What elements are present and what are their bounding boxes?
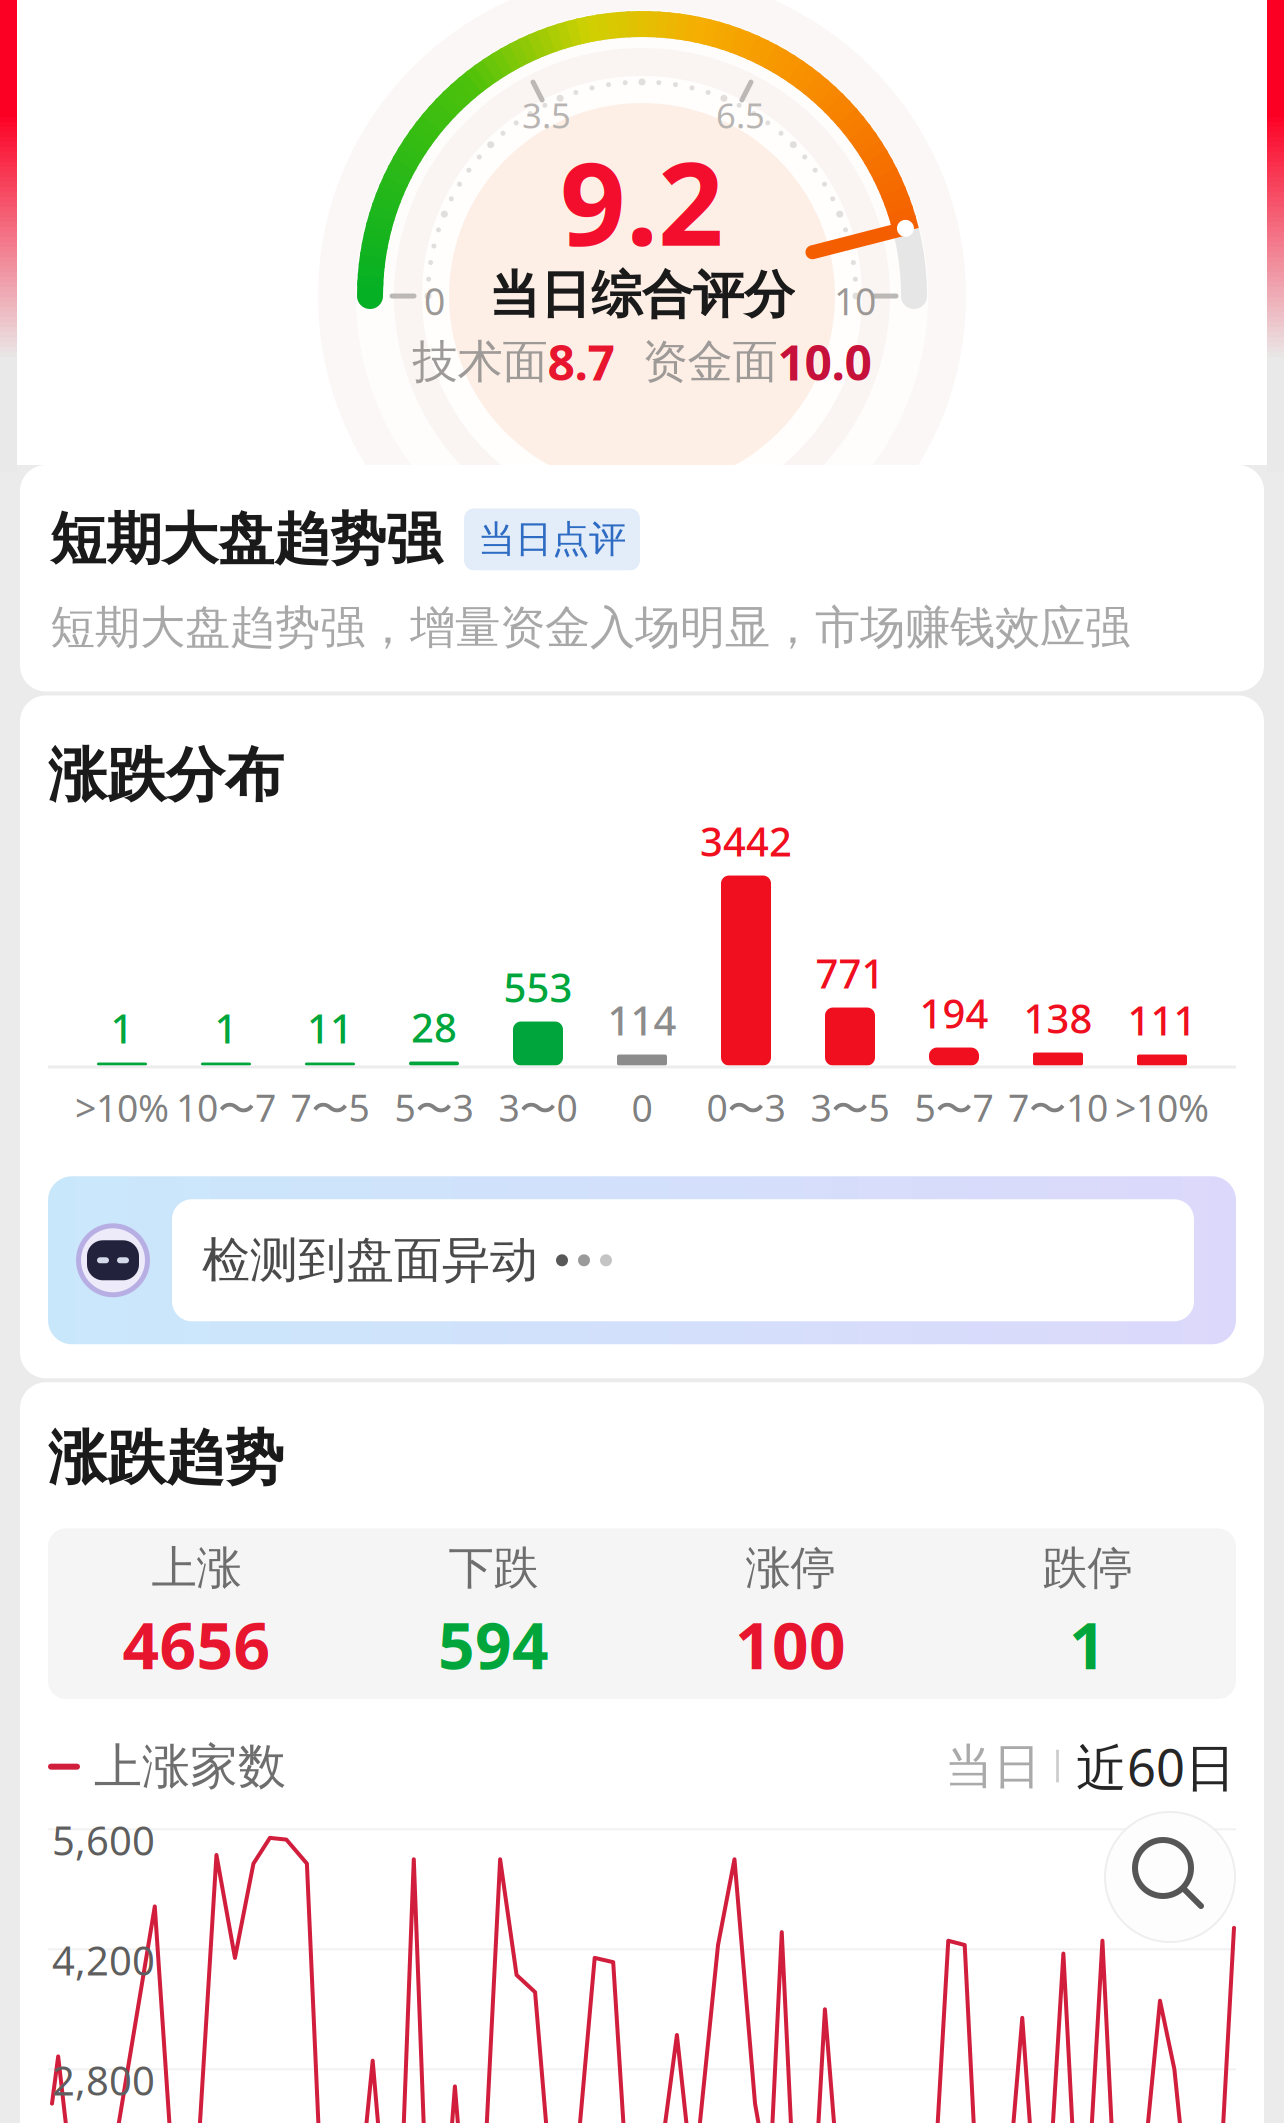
staticText: 1 xyxy=(1069,1602,1106,1687)
button[interactable]: 近60日 xyxy=(1076,1733,1236,1800)
staticText: 近60日 xyxy=(1076,1733,1236,1800)
staticText: 7〜5 xyxy=(290,1082,369,1132)
staticText: 当日综合评分 xyxy=(489,264,795,326)
staticText: 涨跌分布 xyxy=(48,739,284,812)
staticText: 7〜10 xyxy=(1008,1082,1108,1132)
staticText: 1 xyxy=(214,1001,237,1054)
staticText: 当日点评 xyxy=(478,516,626,562)
staticText: 3〜0 xyxy=(498,1082,577,1132)
staticText: 4,200 xyxy=(52,1933,155,1986)
staticText: 9.2 xyxy=(560,125,724,277)
staticText: 28 xyxy=(411,1000,457,1053)
staticText: 111 xyxy=(1127,993,1196,1046)
staticText: 3442 xyxy=(700,814,792,867)
staticText: 跌停 xyxy=(1042,1540,1132,1596)
staticText: 138 xyxy=(1023,991,1092,1044)
staticText: 100 xyxy=(735,1602,846,1687)
staticText: 194 xyxy=(919,986,988,1039)
button[interactable]: Search xyxy=(1105,1812,1235,1942)
staticText: 5〜3 xyxy=(394,1082,473,1132)
staticText: >10% xyxy=(1115,1083,1209,1132)
staticText: 10 xyxy=(834,276,876,326)
button[interactable]: 当日 xyxy=(945,1737,1041,1796)
staticText: 5〜7 xyxy=(914,1082,993,1132)
staticText: 8.7 xyxy=(547,330,614,394)
staticText: 114 xyxy=(607,993,676,1046)
staticText: 771 xyxy=(815,946,884,999)
staticText: 涨跌趋势 xyxy=(48,1422,284,1494)
staticText: 4656 xyxy=(122,1602,270,1687)
staticText: 594 xyxy=(438,1602,549,1687)
staticText: 0〜3 xyxy=(706,1082,785,1132)
staticText: 5,600 xyxy=(52,1813,155,1866)
staticText: 下跌 xyxy=(448,1540,538,1596)
staticText: 0 xyxy=(424,276,445,326)
staticText: 上涨家数 xyxy=(94,1737,286,1796)
staticText: 技术面 xyxy=(412,334,547,390)
button[interactable]: 检测到盘面异动 xyxy=(48,1176,1236,1344)
staticText: 3.5 xyxy=(522,92,571,138)
staticText: 6.5 xyxy=(716,92,765,138)
staticText: 丨 xyxy=(1041,1745,1076,1788)
staticText: 上涨 xyxy=(151,1540,241,1596)
staticText: 2,800 xyxy=(52,2053,155,2106)
staticText: 1 xyxy=(110,1001,133,1054)
staticText: 短期大盘趋势强，增量资金入场明显，市场赚钱效应强 xyxy=(50,600,1130,655)
staticText: 10〜7 xyxy=(176,1082,276,1132)
staticText: 资金面 xyxy=(614,334,777,390)
staticText: 11 xyxy=(307,1001,353,1054)
staticText: 0 xyxy=(631,1083,652,1132)
staticText: 检测到盘面异动 xyxy=(202,1231,538,1290)
staticText: 当日 xyxy=(945,1737,1041,1796)
staticText: 553 xyxy=(503,960,572,1013)
staticText: 短期大盘趋势强 xyxy=(50,505,442,574)
staticText: 10.0 xyxy=(777,330,871,394)
staticText: 涨停 xyxy=(745,1540,835,1596)
staticText: >10% xyxy=(75,1083,169,1132)
staticText: 3〜5 xyxy=(810,1082,889,1132)
